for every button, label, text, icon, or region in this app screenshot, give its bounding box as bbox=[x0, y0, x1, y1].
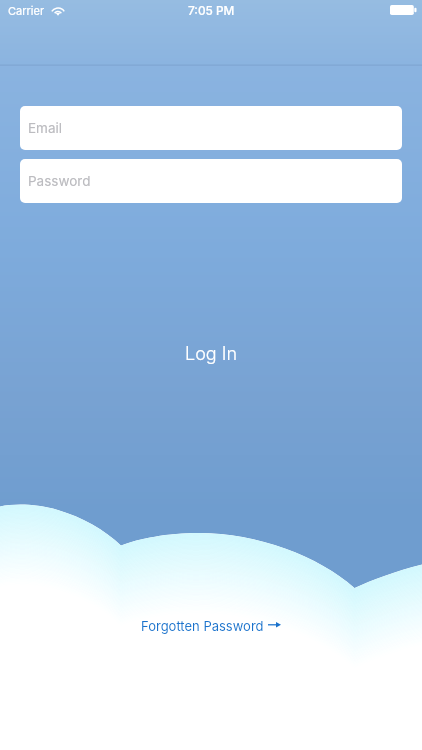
staticText: Password bbox=[28, 173, 91, 189]
other: Go bbox=[268, 620, 281, 632]
staticText: Carrier bbox=[8, 4, 45, 17]
other: Wi-Fi signal bbox=[51, 0, 65, 20]
staticText: Email bbox=[28, 120, 63, 136]
button[interactable]: Email bbox=[20, 106, 402, 150]
button[interactable]: Log In bbox=[163, 335, 260, 373]
button[interactable]: Forgotten Password bbox=[131, 613, 291, 639]
staticText: 7:05 PM bbox=[188, 4, 235, 18]
other: Battery bbox=[390, 5, 417, 15]
staticText: Log In bbox=[185, 343, 238, 365]
staticText: Forgotten Password bbox=[141, 618, 264, 634]
button[interactable]: Password bbox=[20, 159, 402, 203]
